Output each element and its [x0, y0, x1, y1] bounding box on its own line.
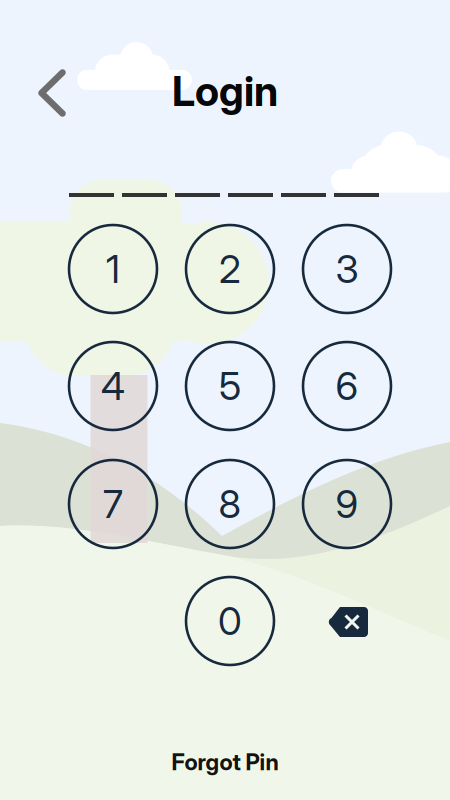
button[interactable]: 8: [186, 460, 274, 548]
button[interactable]: 1: [69, 225, 157, 313]
staticText: 7: [103, 481, 123, 527]
button[interactable]: 0: [186, 577, 274, 665]
staticText: Login: [172, 66, 278, 116]
staticText: 2: [219, 246, 241, 292]
staticText: 0: [218, 598, 242, 644]
button[interactable]: 4: [69, 342, 157, 430]
staticText: 6: [335, 363, 358, 409]
button[interactable]: 5: [186, 342, 274, 430]
button[interactable]: 9: [303, 460, 391, 548]
button[interactable]: 6: [303, 342, 391, 430]
button[interactable]: Forgot Pin: [135, 740, 315, 784]
button[interactable]: 2: [186, 225, 274, 313]
staticText: 9: [335, 481, 358, 527]
button[interactable]: 3: [303, 225, 391, 313]
staticText: 5: [219, 363, 241, 409]
button[interactable]: Back: [22, 63, 82, 123]
button[interactable]: 7: [69, 460, 157, 548]
button[interactable]: Delete: [312, 586, 384, 658]
staticText: 1: [106, 246, 120, 292]
staticText: Forgot Pin: [171, 748, 278, 776]
staticText: 4: [101, 363, 125, 409]
staticText: 3: [335, 246, 358, 292]
staticText: 8: [218, 481, 241, 527]
